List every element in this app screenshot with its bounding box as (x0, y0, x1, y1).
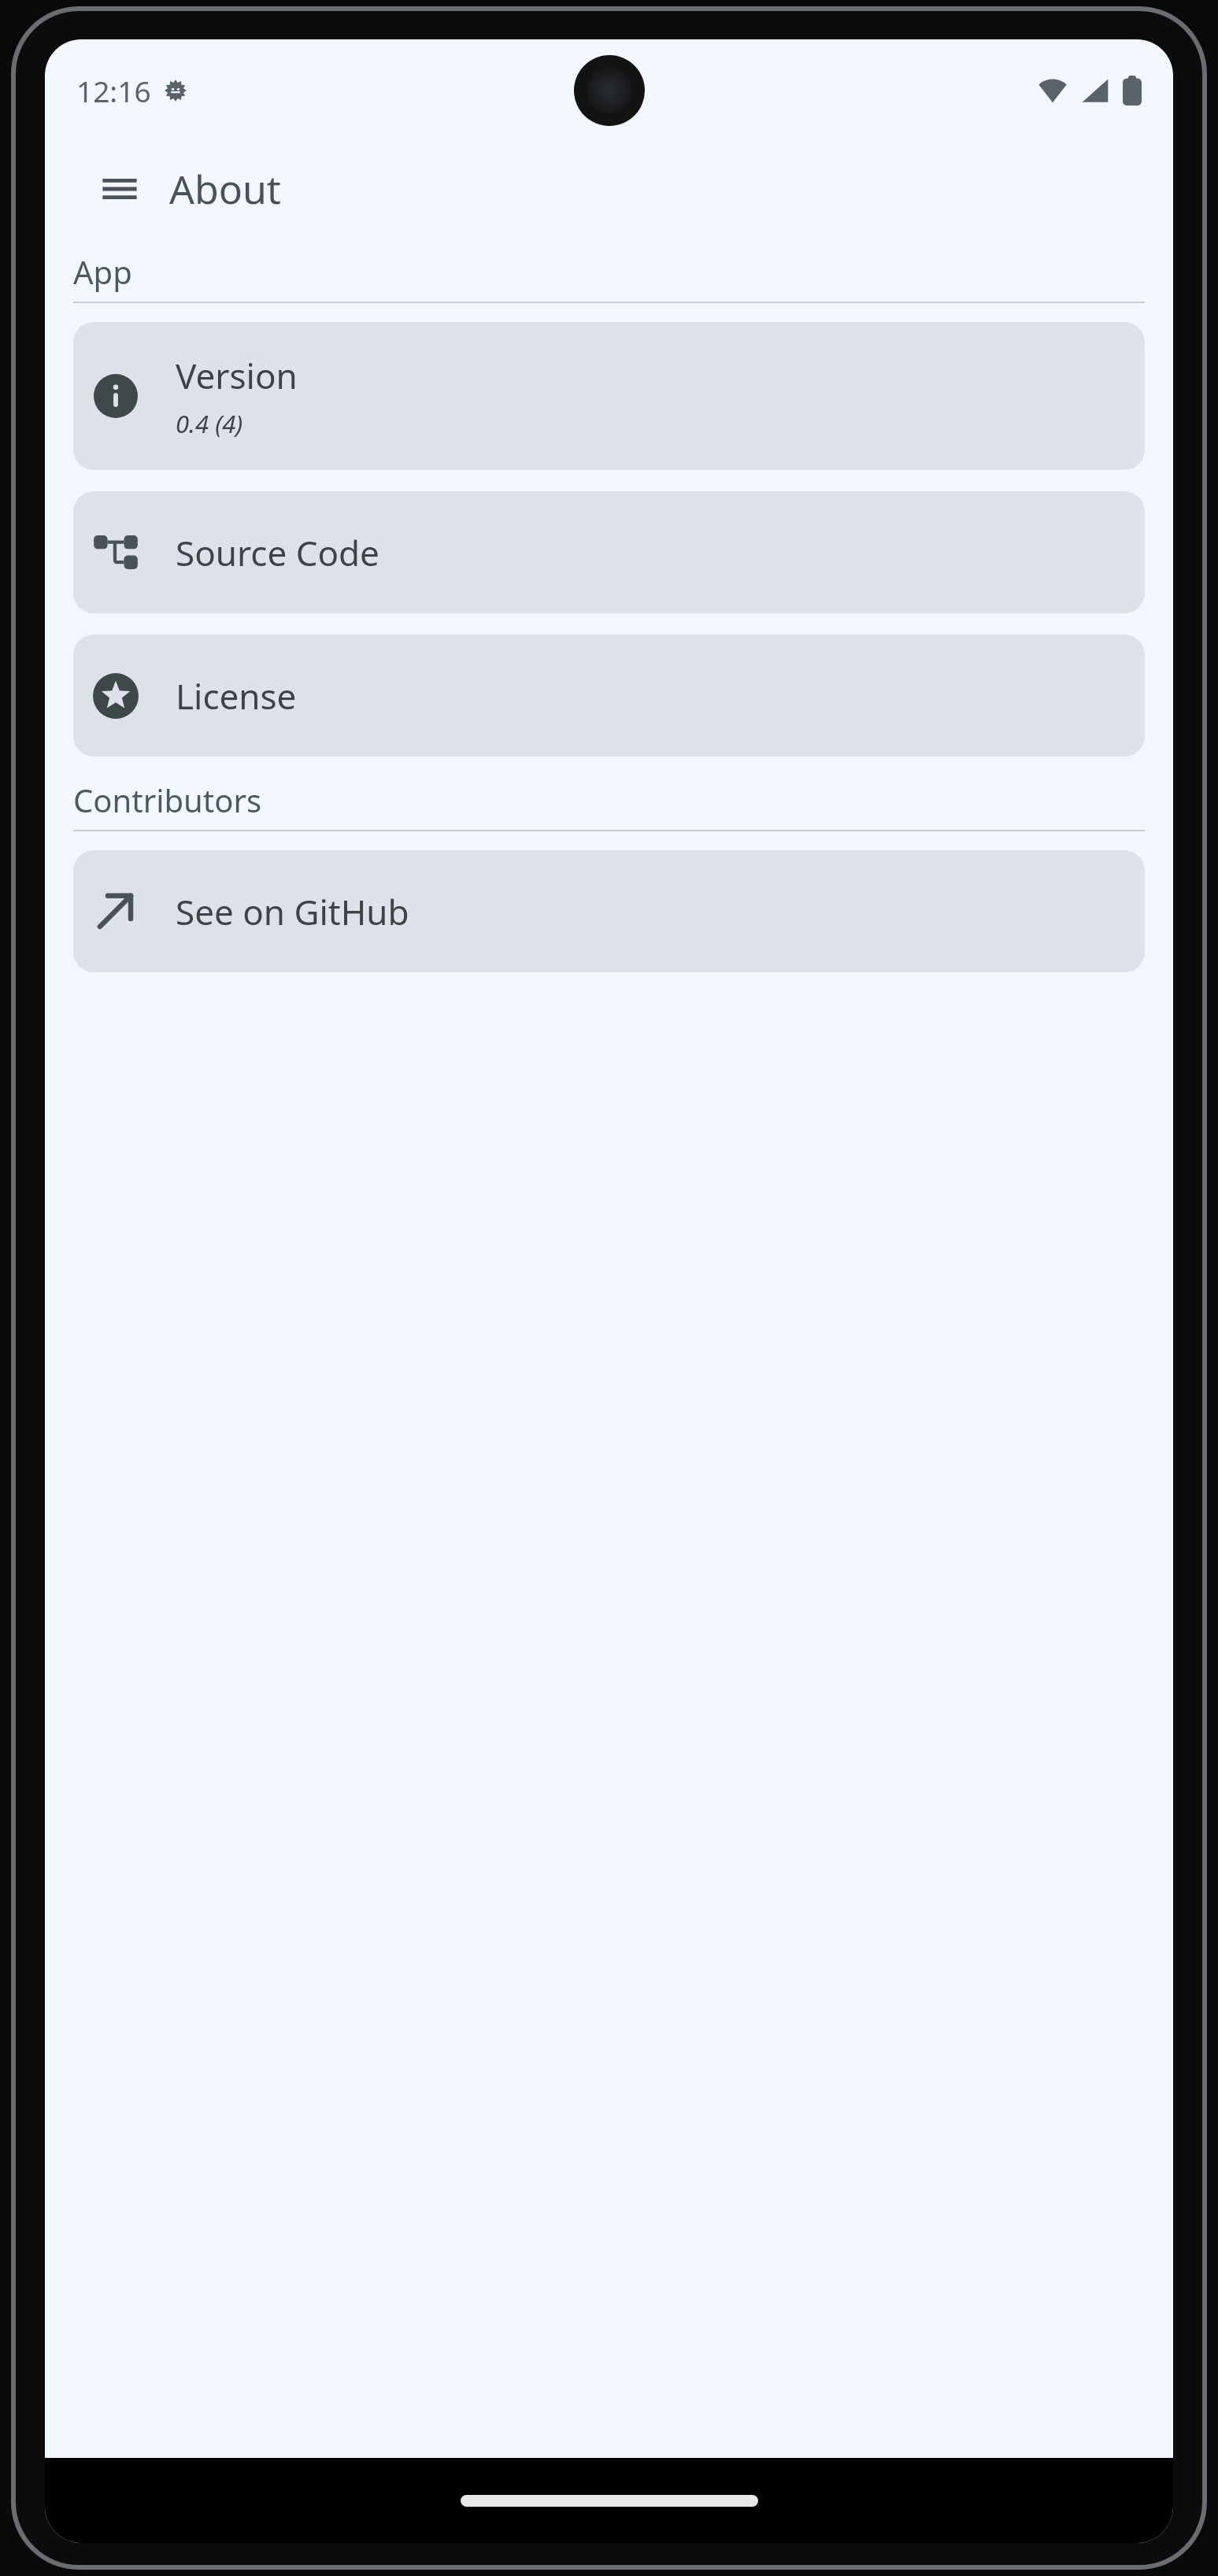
button[interactable]: Open navigation menu (94, 163, 146, 215)
staticText: See on GitHub (176, 888, 409, 935)
staticText: Version (176, 352, 298, 399)
button[interactable]: License (73, 635, 1145, 757)
button[interactable]: See on GitHub (73, 850, 1145, 972)
staticText: App (73, 250, 132, 293)
staticText: 0.4 (4) (176, 407, 243, 440)
staticText: Contributors (73, 779, 262, 821)
staticText: About (169, 162, 281, 216)
button[interactable]: Version (73, 322, 1145, 470)
staticText: Source Code (176, 529, 379, 576)
staticText: 12:16 (76, 71, 151, 110)
button[interactable]: Source Code (73, 491, 1145, 613)
staticText: License (176, 672, 297, 720)
